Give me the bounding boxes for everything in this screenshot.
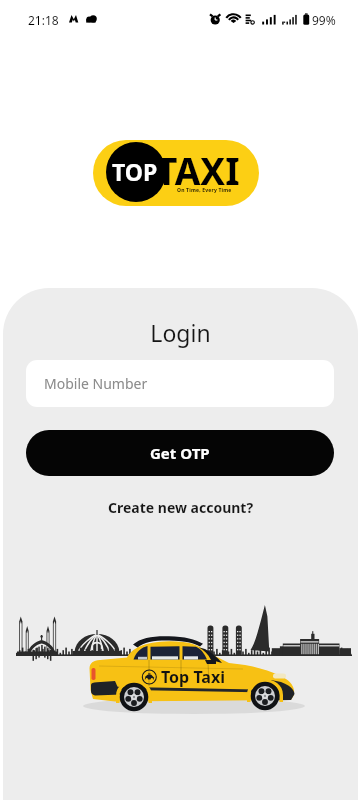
staticText: 99% [312,12,336,28]
button[interactable]: Mobile Number [26,360,334,407]
button[interactable]: Get OTP [26,430,334,476]
staticText: Mobile Number [44,374,148,393]
staticText: Get OTP [150,443,210,463]
button[interactable]: Create new account? [100,494,262,521]
staticText: Create new account? [108,498,254,517]
staticText: TOP [112,156,158,187]
staticText: Login [3,317,358,348]
staticText: 21:18 [28,12,59,28]
staticText: On Time, Every Time [177,187,232,194]
staticText: TAXI [156,145,240,195]
staticText: Top Taxi [161,666,225,688]
